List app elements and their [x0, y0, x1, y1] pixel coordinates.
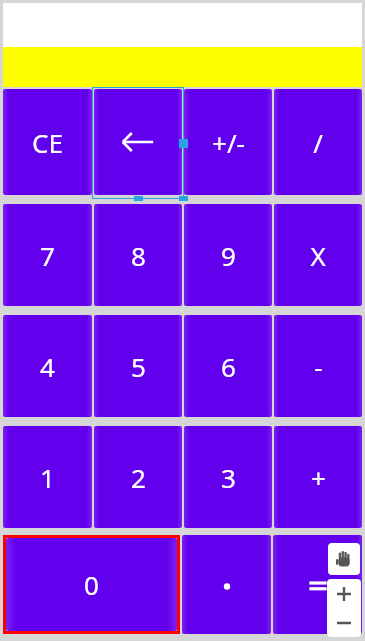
staticText: +: [311, 460, 326, 495]
button[interactable]: 8: [94, 204, 182, 306]
staticText: 6: [221, 349, 236, 384]
button[interactable]: 3: [184, 426, 272, 528]
button[interactable]: -: [274, 315, 362, 417]
button[interactable]: 1: [3, 426, 92, 528]
button[interactable]: Pan tool: [328, 543, 360, 575]
staticText: 4: [40, 349, 55, 384]
button[interactable]: +/-: [184, 89, 272, 195]
staticText: /: [313, 125, 323, 160]
button[interactable]: 7: [3, 204, 92, 306]
staticText: 5: [131, 349, 146, 384]
staticText: 1: [40, 460, 55, 495]
button[interactable]: 0: [6, 538, 177, 631]
button[interactable]: +: [274, 426, 362, 528]
staticText: -: [314, 349, 323, 384]
button[interactable]: 5: [94, 315, 182, 417]
staticText: 2: [131, 460, 146, 495]
button[interactable]: Decimal point: [182, 535, 271, 634]
button[interactable]: /: [274, 89, 362, 195]
staticText: 0: [84, 567, 99, 602]
button[interactable]: Zoom in: [327, 579, 361, 609]
staticText: CE: [32, 125, 63, 160]
button[interactable]: Zoom out: [327, 609, 361, 637]
staticText: X: [310, 238, 326, 273]
button[interactable]: Backspace: [94, 89, 182, 195]
staticText: 9: [221, 238, 236, 273]
button[interactable]: 6: [184, 315, 272, 417]
button[interactable]: 9: [184, 204, 272, 306]
button[interactable]: X: [274, 204, 362, 306]
button[interactable]: 2: [94, 426, 182, 528]
staticText: +/-: [212, 125, 245, 160]
button[interactable]: 4: [3, 315, 92, 417]
staticText: 8: [131, 238, 146, 273]
button[interactable]: CE: [3, 89, 92, 195]
staticText: 3: [221, 460, 236, 495]
button[interactable]: Equals: [273, 535, 362, 634]
staticText: 7: [40, 238, 55, 273]
